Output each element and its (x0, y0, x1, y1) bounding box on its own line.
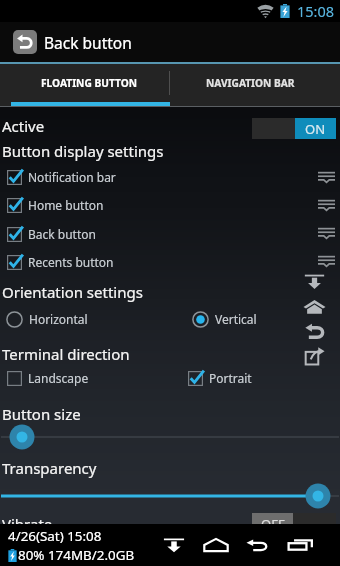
staticText: Button size (2, 404, 81, 424)
staticText: 15:08 (297, 1, 335, 21)
staticText: Recents button (28, 254, 114, 270)
staticText: Horizontal (29, 311, 88, 327)
button[interactable]: Reorder (314, 246, 338, 274)
staticText: Notification bar (28, 169, 116, 185)
staticText: 4/26(Sat) 15:08 (8, 527, 102, 545)
button[interactable]: Recents (300, 344, 329, 369)
staticText: ON (305, 120, 326, 138)
button[interactable]: Notification bar (300, 269, 329, 294)
button[interactable]: Back button (0, 221, 340, 247)
button[interactable]: Home (195, 524, 237, 566)
button[interactable]: Notification bar (153, 524, 195, 566)
staticText: FLOATING BUTTON (41, 76, 137, 90)
staticText: Back button (28, 226, 96, 242)
button[interactable]: Horizontal (0, 307, 160, 331)
button[interactable]: Reorder (314, 218, 338, 246)
staticText: 80% 174MB/2.0GB (18, 546, 135, 564)
button[interactable]: OFF (252, 513, 336, 534)
staticText: OFF (261, 515, 285, 533)
button[interactable]: Recents (279, 524, 321, 566)
staticText: NAVIGATION BAR (206, 76, 295, 90)
staticText: Button display settings (2, 141, 164, 161)
button[interactable]: Home (300, 294, 329, 319)
button[interactable]: Back (300, 319, 329, 344)
staticText: Vertical (215, 311, 257, 327)
button[interactable]: NAVIGATION BAR (170, 64, 340, 102)
button[interactable]: Recents button (0, 249, 340, 275)
button[interactable]: Back (237, 524, 279, 566)
button[interactable] (0, 424, 340, 450)
button[interactable]: Reorder (314, 162, 338, 190)
button[interactable]: Vertical (186, 307, 340, 331)
staticText: Back button (44, 32, 132, 53)
button[interactable]: FLOATING BUTTON (0, 64, 169, 102)
button[interactable]: Notification bar (0, 164, 340, 190)
button[interactable]: Home button (0, 192, 340, 218)
button[interactable]: Active (0, 114, 340, 138)
staticText: Active (2, 116, 45, 136)
button[interactable]: ON (252, 118, 336, 139)
staticText: Portrait (209, 370, 252, 386)
staticText: Orientation settings (2, 282, 143, 302)
button[interactable]: Reorder (314, 190, 338, 218)
button[interactable]: Portrait (181, 366, 340, 390)
button[interactable]: Back button (0, 22, 340, 62)
staticText: Transparency (2, 458, 97, 478)
button[interactable] (0, 483, 340, 509)
staticText: Terminal direction (2, 344, 130, 364)
button[interactable]: Landscape (0, 366, 160, 390)
staticText: Home button (28, 197, 104, 213)
staticText: Landscape (28, 370, 89, 386)
staticText: Vibrate (2, 514, 53, 534)
